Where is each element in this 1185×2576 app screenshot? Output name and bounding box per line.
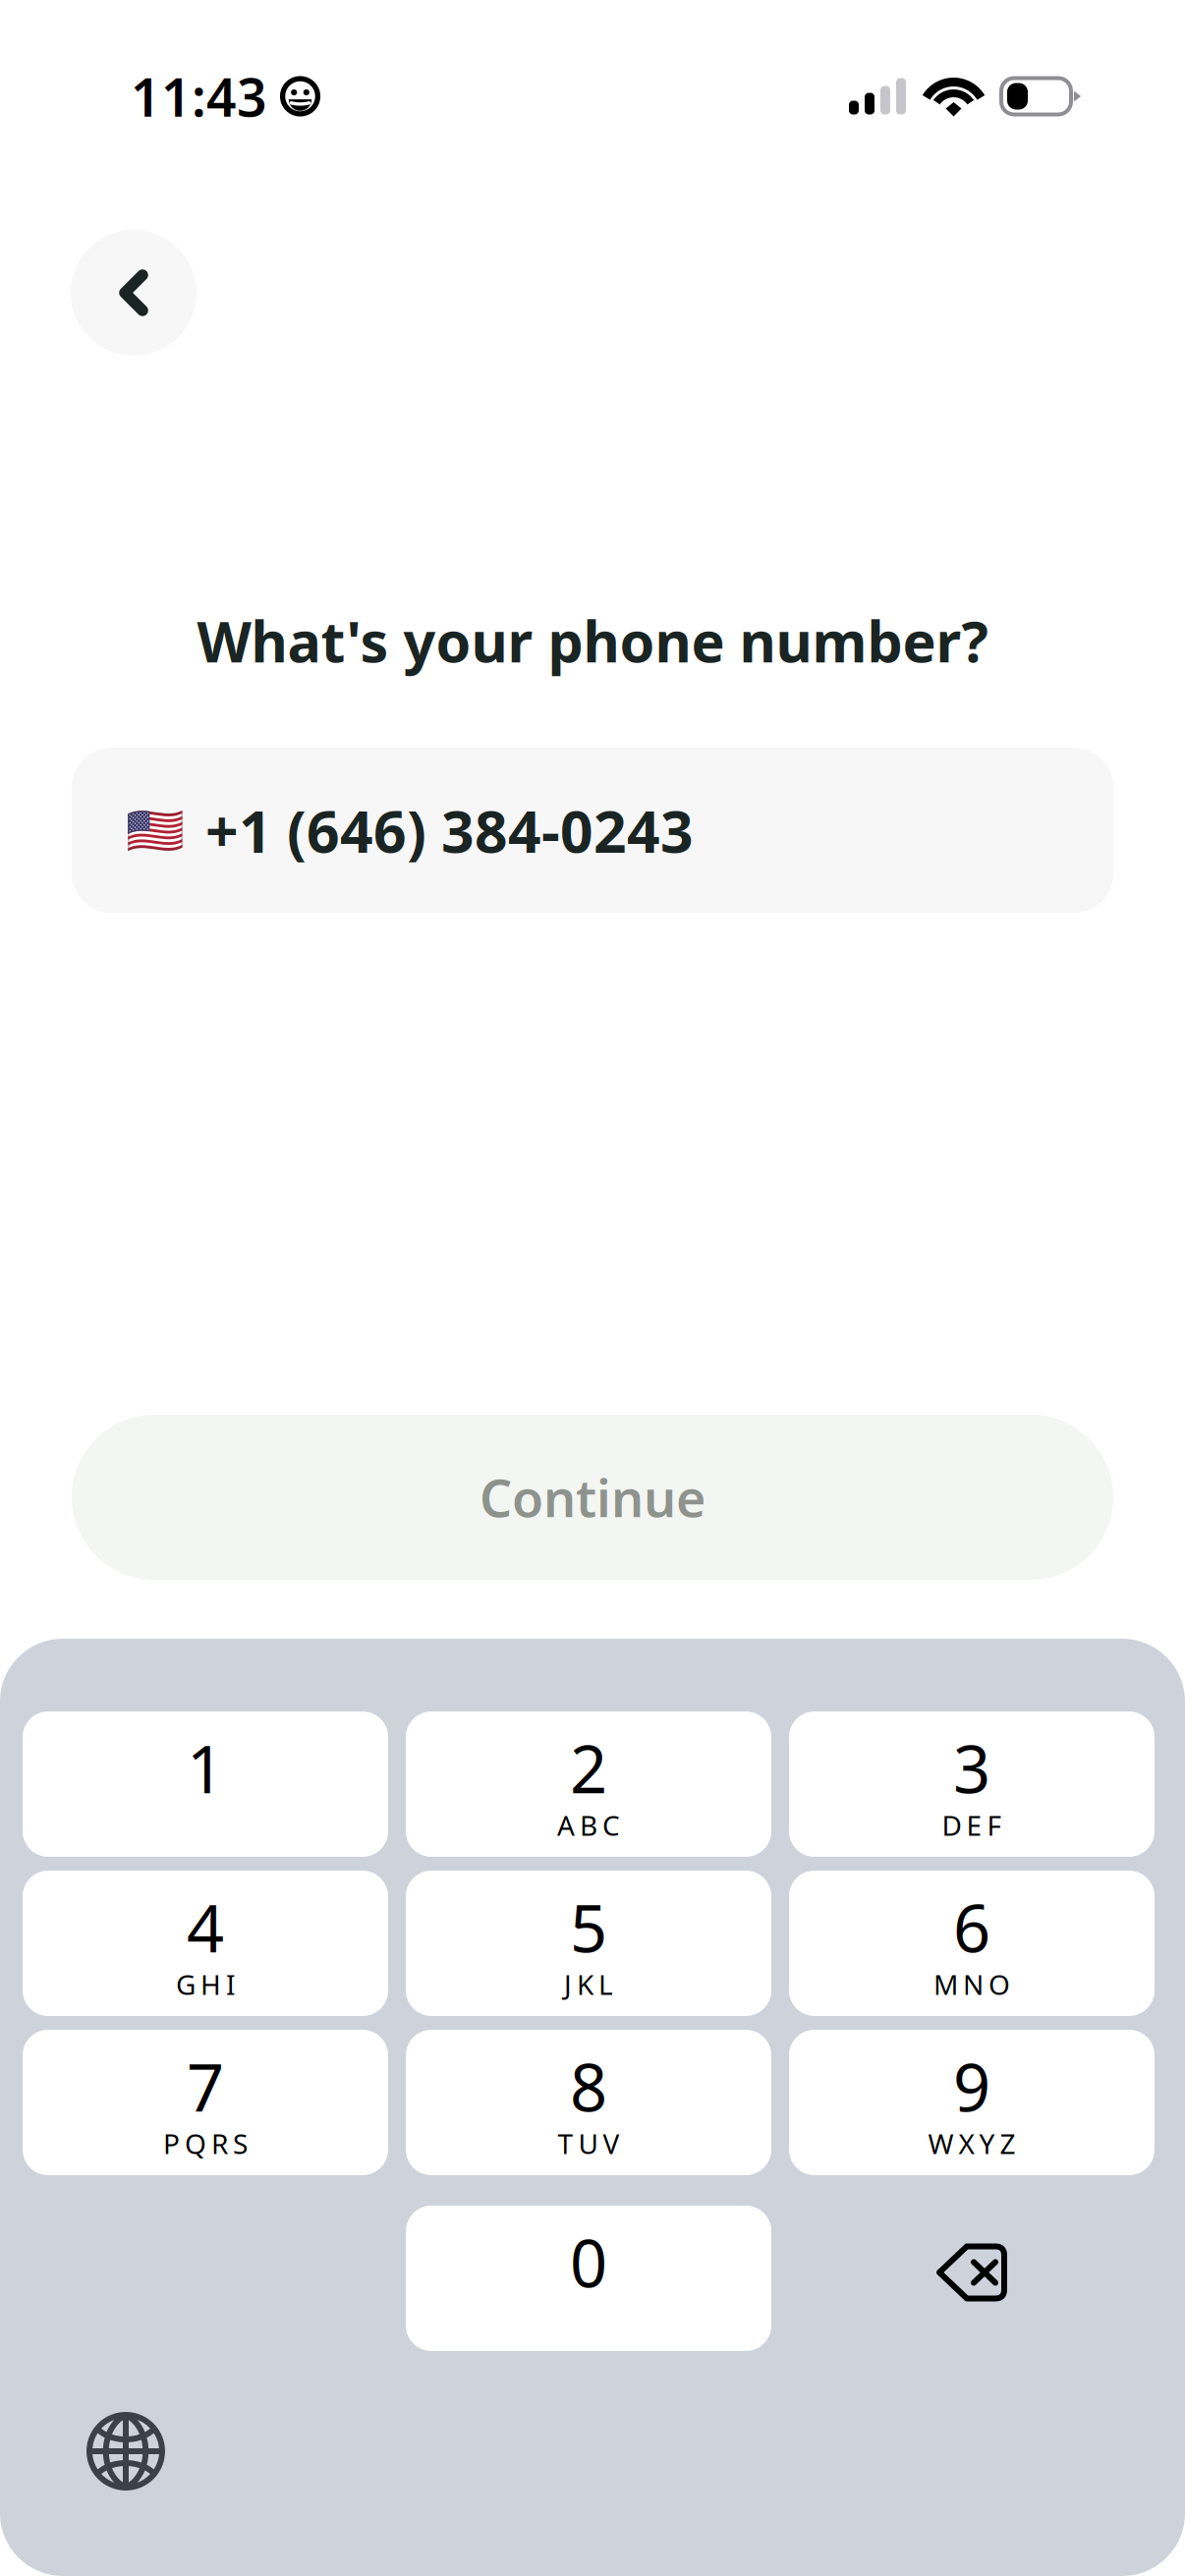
staticText: T U V: [558, 2125, 620, 2162]
button[interactable]: 5: [406, 1871, 771, 2016]
staticText: Continue: [480, 1463, 705, 1531]
staticText: 5: [570, 1883, 607, 1970]
button[interactable]: 0: [406, 2206, 771, 2351]
button[interactable]: Back: [71, 230, 197, 356]
staticText: 2: [570, 1724, 607, 1811]
staticText: +1 (646) 384-0243: [205, 792, 694, 869]
button[interactable]: 6: [789, 1871, 1155, 2016]
staticText: 0: [570, 2218, 607, 2305]
staticText: A B C: [557, 1807, 620, 1843]
button[interactable]: 🇺🇸: [72, 748, 1113, 913]
button[interactable]: Switch keyboard: [67, 2392, 185, 2510]
button[interactable]: 3: [789, 1711, 1155, 1857]
staticText: P Q R S: [163, 2125, 248, 2162]
staticText: What's your phone number?: [197, 603, 988, 678]
button[interactable]: 1: [23, 1711, 388, 1857]
staticText: 9: [953, 2043, 990, 2129]
staticText: G H I: [176, 1966, 235, 2002]
staticText: 8: [570, 2043, 607, 2129]
staticText: D E F: [942, 1807, 1002, 1843]
staticText: 6: [953, 1883, 990, 1970]
staticText: W X Y Z: [928, 2125, 1016, 2162]
button[interactable]: 2: [406, 1711, 771, 1857]
button[interactable]: Delete: [789, 2206, 1155, 2351]
staticText: 1: [187, 1724, 224, 1811]
staticText: 11:43: [131, 62, 267, 131]
button[interactable]: Continue: [72, 1415, 1113, 1580]
staticText: M N O: [933, 1966, 1010, 2002]
staticText: J K L: [564, 1966, 613, 2002]
button[interactable]: 8: [406, 2030, 771, 2175]
staticText: 4: [187, 1883, 224, 1970]
button[interactable]: 7: [23, 2030, 388, 2175]
button[interactable]: 4: [23, 1871, 388, 2016]
button[interactable]: 9: [789, 2030, 1155, 2175]
staticText: 3: [953, 1724, 990, 1811]
staticText: 🇺🇸: [126, 803, 185, 857]
staticText: 7: [187, 2043, 224, 2129]
